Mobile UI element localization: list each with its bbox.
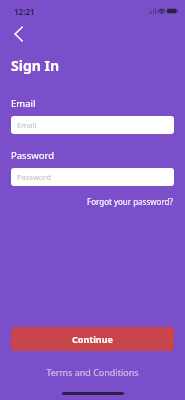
staticText: Password bbox=[11, 149, 54, 162]
button[interactable]: Terms and Conditions bbox=[42, 364, 143, 380]
staticText: Terms and Conditions bbox=[46, 366, 139, 378]
staticText: Continue bbox=[72, 333, 113, 345]
staticText: Forgot your password? bbox=[87, 196, 173, 207]
staticText: 12:21 bbox=[14, 6, 35, 17]
staticText: Password bbox=[17, 172, 51, 182]
button[interactable]: Back bbox=[7, 23, 29, 45]
staticText: Email bbox=[11, 97, 36, 110]
staticText: Email bbox=[17, 120, 37, 130]
button[interactable]: Email bbox=[11, 116, 174, 134]
button[interactable]: Password bbox=[11, 168, 174, 186]
staticText: Sign In bbox=[11, 56, 60, 75]
button[interactable]: Continue bbox=[11, 327, 174, 351]
button[interactable]: Forgot your password? bbox=[86, 194, 174, 209]
